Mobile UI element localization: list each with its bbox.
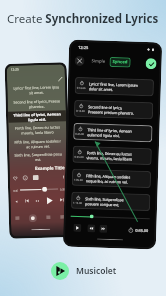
staticText: Lyrics' first line, Lorem ipsu sit amet. xyxy=(8,84,64,96)
staticText: Third line of lyrics, Aenean euismod lig… xyxy=(87,127,150,139)
staticText: 12:25 xyxy=(78,45,89,50)
button[interactable]: 1:05.00 xyxy=(72,169,151,188)
staticText: Synced xyxy=(112,59,128,65)
button[interactable]: Simple xyxy=(89,56,108,67)
button[interactable]: 0:15.00 xyxy=(74,100,153,119)
staticText: 1 xyxy=(63,174,65,179)
button[interactable]: 0:16.66 xyxy=(75,77,154,96)
staticText: Third line of lyrics, Aenean ligula nisl… xyxy=(9,111,65,123)
staticText: 0:55.00 xyxy=(74,155,84,159)
staticText: Second line of lyrics, Praese pharetra. xyxy=(9,98,65,110)
staticText: 0:46 xyxy=(13,189,18,192)
staticText: 0:45.00 xyxy=(75,132,84,136)
staticText: 3:20 xyxy=(60,187,65,190)
staticText: 0:16.66 xyxy=(77,86,86,90)
staticText: 1:15.00 xyxy=(73,201,82,205)
staticText: 1:05.00 xyxy=(74,178,83,182)
button[interactable]: Play xyxy=(73,224,81,232)
staticText: Lyrics' first line, Lorem ipsum dolor si… xyxy=(89,81,152,93)
staticText: Fifth line, Aliquam sodales r ac rutrum … xyxy=(10,138,66,150)
staticText: Forth line, Donec eu luctus viverra, mau… xyxy=(86,150,150,162)
button[interactable]: Close xyxy=(74,56,85,66)
staticText: 12:25 xyxy=(11,67,20,72)
staticText: Create Synchronized Lyrics xyxy=(7,11,159,27)
staticText: Forth line, Donec eu luctus mauris, lanl… xyxy=(9,124,66,136)
staticText: Second line of lyrics, Praesent pretium … xyxy=(88,104,151,116)
staticText: Sixth line, Suspendisse posu est. xyxy=(10,151,66,163)
button[interactable]: 0:55.00 xyxy=(72,146,152,165)
button[interactable]: Rewind xyxy=(87,224,95,232)
staticText: Fifth line, Aliquam sodales neque leo, a… xyxy=(86,173,149,185)
staticText: Sixth line, Suspendisse posuere congue e… xyxy=(85,196,148,208)
button[interactable]: Done xyxy=(145,58,157,69)
button[interactable]: 0:45.00 xyxy=(73,123,153,142)
staticText: 0:45.00 xyxy=(135,228,148,233)
button[interactable]: Synced xyxy=(109,57,131,68)
staticText: Example Title xyxy=(9,164,64,172)
button[interactable]: Fast forward xyxy=(99,225,107,233)
staticText: Simple xyxy=(91,58,106,65)
staticText: Musicolet xyxy=(76,265,117,277)
button[interactable]: 1:15.00 xyxy=(71,192,150,211)
staticText: 0:15.00 xyxy=(76,109,85,113)
